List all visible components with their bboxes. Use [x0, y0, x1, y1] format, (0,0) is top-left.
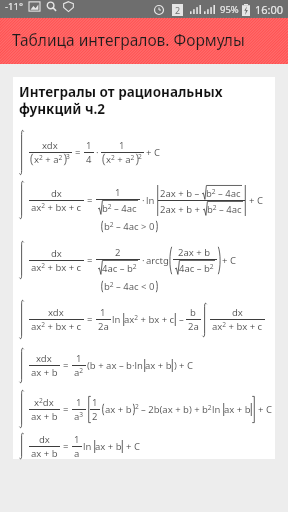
staticText: 1 — [76, 396, 82, 409]
staticText: 2ax + b + — [160, 203, 203, 216]
staticText: ax + b — [145, 359, 172, 372]
staticText: + C — [146, 146, 160, 159]
staticText: b2 – 4ac — [206, 187, 241, 200]
staticText: Интегралы от рациональных функций ч.2 — [19, 83, 223, 118]
staticText: · — [96, 146, 99, 159]
staticText: x2dx — [34, 396, 54, 409]
staticText: 4ac – b2 — [102, 262, 137, 275]
staticText: arctg — [146, 254, 169, 267]
staticText: xdx — [42, 139, 58, 152]
staticText: 2a — [188, 320, 199, 333]
staticText: 3 — [66, 152, 70, 161]
staticText: 2ax + b – — [160, 187, 202, 200]
staticText: + C — [222, 254, 236, 267]
staticText: -11° — [5, 0, 23, 13]
other: Alarm — [154, 5, 164, 15]
staticText: ax2 + bx + c — [124, 313, 175, 326]
staticText: 1 — [86, 139, 92, 152]
staticText: dx — [39, 433, 50, 446]
staticText: x2 + a2 — [34, 153, 63, 166]
staticText: dx — [51, 247, 62, 260]
other: Security — [63, 1, 74, 12]
staticText: ax + b — [224, 403, 251, 416]
staticText: ln — [212, 403, 221, 416]
staticText: b2 – 4ac — [207, 203, 242, 216]
staticText: 4ac – b2 — [179, 262, 214, 275]
staticText: – — [179, 313, 184, 326]
staticText: a — [74, 447, 80, 460]
staticText: – 2b(ax + b) + — [141, 403, 200, 416]
staticText: 2ax + b — [178, 246, 211, 259]
staticText: 1 — [74, 433, 80, 446]
staticText: ln — [83, 440, 92, 453]
staticText: 2 — [175, 4, 181, 16]
staticText: ax2 + bx + c — [212, 320, 263, 333]
staticText: b2 — [202, 403, 212, 416]
staticText: b2 – 4ac < 0 — [104, 280, 155, 293]
staticText: dx — [232, 306, 243, 319]
staticText: ax + b — [105, 403, 132, 416]
staticText: ax + b — [31, 447, 58, 460]
staticText: ax2 + bx + c — [31, 261, 82, 274]
staticText: 2 — [115, 246, 121, 259]
staticText: 1 — [115, 186, 121, 199]
staticText: 1 — [100, 306, 106, 319]
staticText: ax2 + bx + c — [31, 320, 82, 333]
staticText: 1 — [119, 139, 125, 152]
staticText: 95% — [220, 3, 239, 16]
staticText: b2 – 4ac > 0 — [104, 220, 155, 233]
staticText: = — [87, 254, 93, 267]
other: Gallery — [29, 1, 40, 12]
staticText: = — [87, 194, 93, 207]
staticText: 1 — [92, 396, 98, 409]
staticText: = — [75, 146, 81, 159]
staticText: dx — [51, 187, 62, 200]
staticText: 2 — [135, 402, 139, 411]
staticText: (b + ax – b·ln — [87, 359, 143, 372]
staticText: 2 — [92, 410, 98, 423]
button[interactable]: Таблица интегралов. Формулы — [0, 18, 288, 64]
staticText: b2 – 4ac — [102, 202, 137, 215]
staticText: ln — [146, 194, 155, 207]
staticText: a2 — [74, 366, 84, 379]
staticText: ax2 + bx + c — [31, 201, 82, 214]
staticText: a3 — [74, 410, 84, 423]
staticText: 2a — [98, 320, 109, 333]
staticText: xdx — [36, 352, 52, 365]
staticText: Таблица интегралов. Формулы — [12, 29, 245, 50]
staticText: ax + b — [95, 440, 122, 453]
staticText: · — [142, 194, 145, 207]
staticText: 1 — [76, 352, 82, 365]
staticText: x2 + a2 — [106, 153, 135, 166]
staticText: + C — [179, 359, 193, 372]
staticText: · — [142, 254, 145, 267]
staticText: = — [63, 440, 69, 453]
staticText: 4 — [86, 153, 92, 166]
staticText: = — [63, 359, 69, 372]
staticText: b — [190, 306, 196, 319]
staticText: + C — [126, 440, 140, 453]
staticText: = — [63, 403, 69, 416]
staticText: ax + b — [31, 410, 58, 423]
other: Search — [46, 1, 57, 12]
staticText: 16:00 — [255, 2, 284, 17]
staticText: + C — [258, 403, 272, 416]
staticText: ) — [174, 359, 177, 372]
staticText: ln — [112, 313, 121, 326]
staticText: xdx — [48, 306, 64, 319]
staticText: 2 — [138, 152, 142, 161]
staticText: + C — [249, 194, 263, 207]
staticText: ax + b — [31, 366, 58, 379]
staticText: = — [87, 313, 93, 326]
